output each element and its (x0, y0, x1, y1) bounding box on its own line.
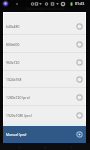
button[interactable]: 1024x768 (3, 70, 86, 88)
button[interactable]: 800x600 (3, 35, 86, 53)
staticText: 960x720 (6, 60, 20, 65)
staticText: 640x480 (6, 24, 20, 29)
staticText: 01:43 (75, 1, 85, 6)
staticText: Select video resolution (26, 6, 65, 11)
staticText: 1920x1080 (pro) (6, 113, 32, 118)
staticText: 1280x720 (pro) (6, 95, 30, 100)
button[interactable]: Manual (pro) (3, 126, 86, 143)
staticText: 1024x768 (6, 77, 22, 82)
button[interactable]: 1920x1080 (pro) (3, 106, 86, 124)
button[interactable]: 640x480 (3, 17, 86, 35)
staticText: 800x600 (6, 42, 20, 47)
button[interactable]: 1280x720 (pro) (3, 88, 86, 106)
button[interactable]: 960x720 (3, 53, 86, 71)
staticText: Manual (pro) (6, 132, 27, 137)
